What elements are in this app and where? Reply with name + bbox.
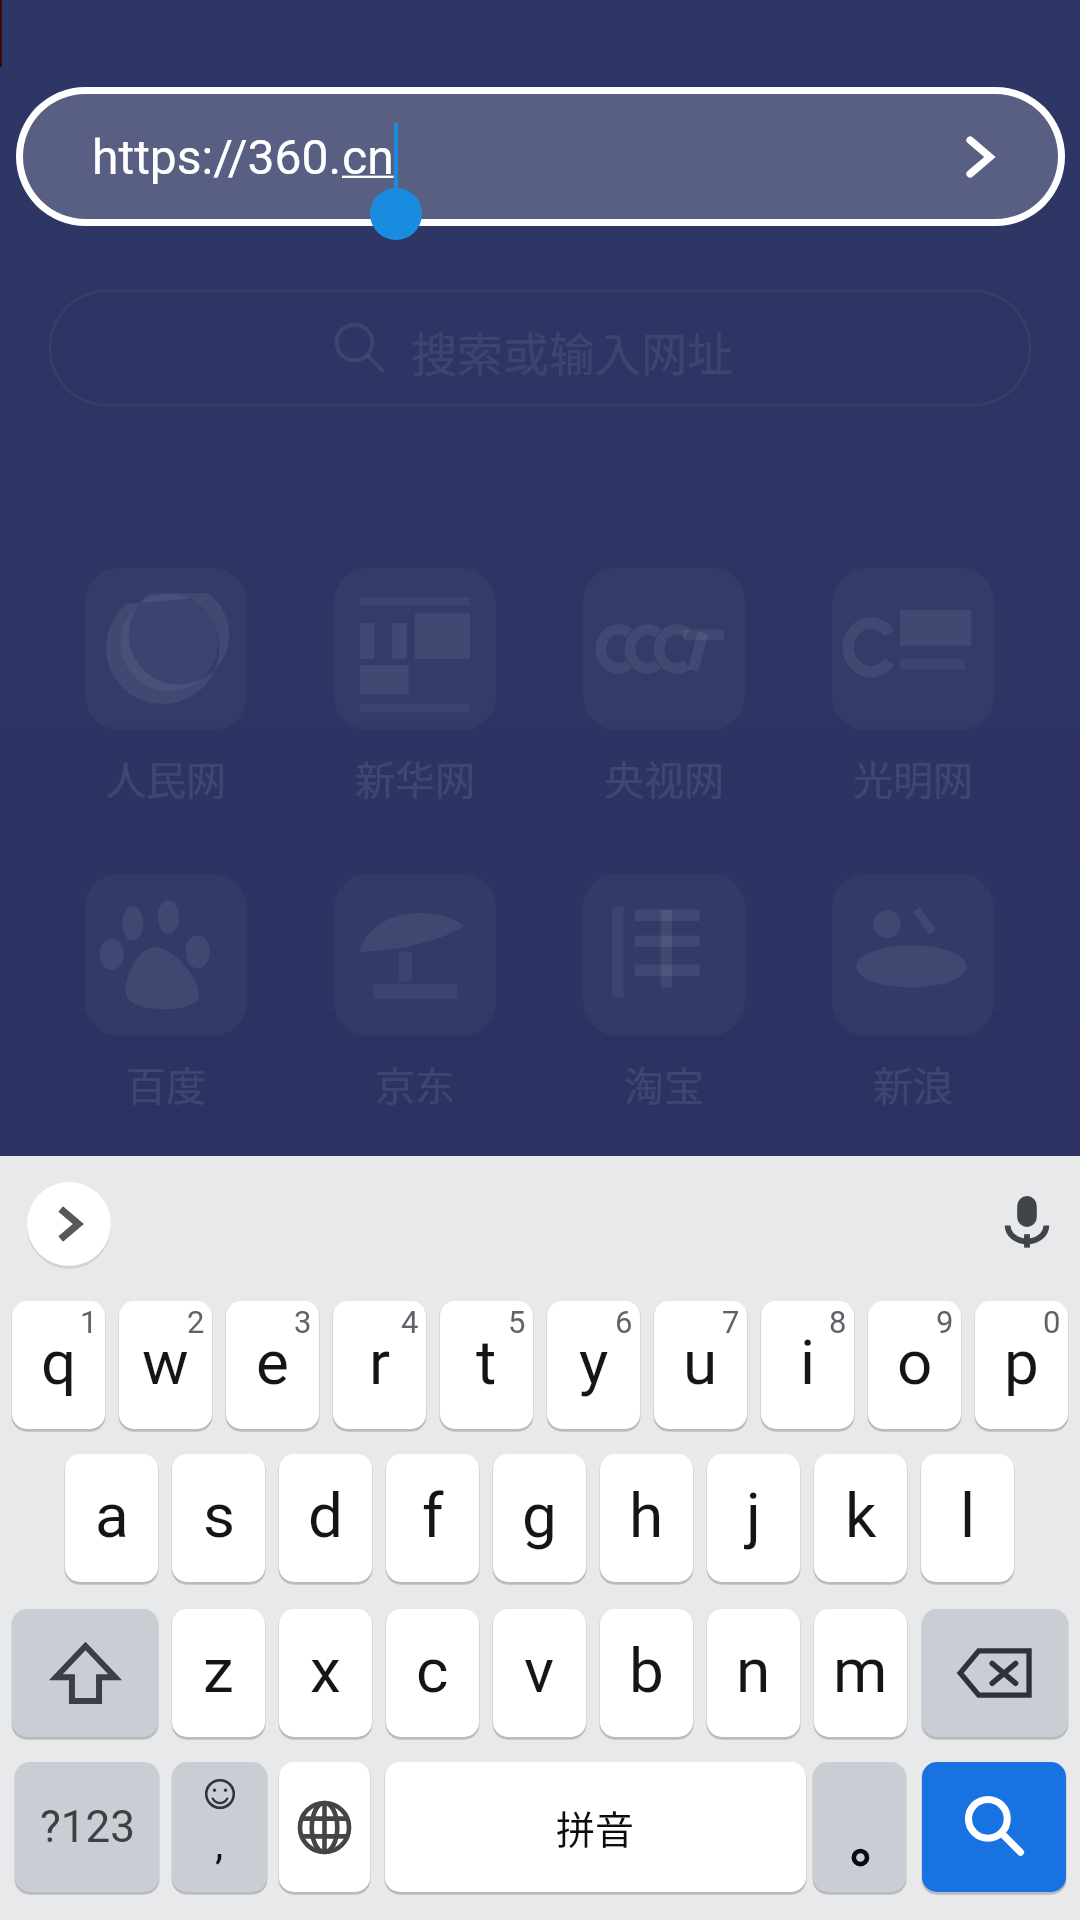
staticText: r xyxy=(369,1326,391,1399)
staticText: h xyxy=(629,1479,664,1552)
staticText: 1 xyxy=(80,1304,98,1340)
staticText: w xyxy=(142,1326,189,1399)
button[interactable]: 2 xyxy=(119,1301,212,1429)
staticText: s xyxy=(203,1479,235,1552)
button[interactable]: Change language xyxy=(279,1762,370,1892)
staticText: n xyxy=(736,1634,771,1707)
button[interactable]: 5 xyxy=(440,1301,533,1429)
staticText: 0 xyxy=(1043,1304,1061,1340)
staticText: t xyxy=(476,1326,497,1399)
staticText: 3 xyxy=(294,1304,312,1340)
staticText: b xyxy=(629,1634,664,1707)
button[interactable]: c xyxy=(386,1609,479,1737)
button[interactable]: 0 xyxy=(975,1301,1068,1429)
staticText: 人民网 xyxy=(106,749,226,805)
button[interactable]: 京东 xyxy=(334,874,496,1036)
staticText: i xyxy=(800,1326,816,1399)
staticText: l xyxy=(960,1479,976,1552)
staticText: g xyxy=(522,1479,557,1552)
button[interactable]: m xyxy=(814,1609,907,1737)
staticText: 新浪 xyxy=(873,1055,953,1111)
staticText: cn xyxy=(342,129,394,185)
staticText: 搜索或输入网址 xyxy=(411,318,733,385)
staticText: 2 xyxy=(187,1304,205,1340)
button[interactable]: 6 xyxy=(547,1301,640,1429)
button[interactable]: Period xyxy=(813,1762,906,1892)
button[interactable]: 1 xyxy=(12,1301,105,1429)
button[interactable]: Symbols xyxy=(15,1762,159,1892)
staticText: c xyxy=(416,1634,449,1707)
button[interactable]: 拼音 xyxy=(385,1762,806,1892)
staticText: m xyxy=(833,1634,888,1707)
staticText: o xyxy=(897,1326,933,1399)
staticText: p xyxy=(1004,1326,1039,1399)
staticText: d xyxy=(308,1479,343,1552)
button[interactable]: Cursor handle xyxy=(370,188,422,240)
button[interactable]: 央视网 xyxy=(583,568,745,730)
staticText: 9 xyxy=(936,1304,954,1340)
button[interactable]: Emoji and comma xyxy=(172,1762,267,1892)
button[interactable]: a xyxy=(65,1454,158,1582)
button[interactable]: l xyxy=(921,1454,1014,1582)
staticText: f xyxy=(422,1479,444,1552)
staticText: https://360. xyxy=(92,129,342,185)
button[interactable]: Search or type URL xyxy=(50,291,1030,405)
button[interactable]: 8 xyxy=(761,1301,854,1429)
staticText: x xyxy=(310,1634,341,1707)
staticText: v xyxy=(524,1634,555,1707)
staticText: j xyxy=(746,1479,761,1552)
button[interactable]: k xyxy=(814,1454,907,1582)
button[interactable]: g xyxy=(493,1454,586,1582)
button[interactable]: 3 xyxy=(226,1301,319,1429)
staticText: a xyxy=(95,1479,129,1552)
staticText: z xyxy=(203,1634,234,1707)
staticText: 5 xyxy=(508,1304,526,1340)
button[interactable]: 百度 xyxy=(85,874,247,1036)
button[interactable]: d xyxy=(279,1454,372,1582)
staticText: 光明网 xyxy=(853,749,973,805)
button[interactable]: https://360. xyxy=(23,94,1058,219)
button[interactable]: b xyxy=(600,1609,693,1737)
button[interactable]: j xyxy=(707,1454,800,1582)
staticText: 6 xyxy=(615,1304,633,1340)
button[interactable]: 9 xyxy=(868,1301,961,1429)
button[interactable]: n xyxy=(707,1609,800,1737)
button[interactable]: Expand toolbar xyxy=(27,1182,111,1266)
staticText: y xyxy=(579,1326,609,1399)
button[interactable]: Go xyxy=(947,124,1013,190)
button[interactable]: Shift xyxy=(12,1609,158,1737)
staticText: 央视网 xyxy=(604,749,724,805)
staticText: e xyxy=(256,1326,289,1399)
button[interactable]: x xyxy=(279,1609,372,1737)
staticText: , xyxy=(215,1820,224,1869)
staticText: 8 xyxy=(829,1304,847,1340)
staticText: u xyxy=(683,1326,718,1399)
button[interactable]: 7 xyxy=(654,1301,747,1429)
button[interactable]: Search xyxy=(922,1762,1066,1892)
staticText: ?123 xyxy=(40,1801,135,1853)
button[interactable]: 淘宝 xyxy=(583,874,745,1036)
staticText: 拼音 xyxy=(556,1799,635,1855)
button[interactable]: s xyxy=(172,1454,265,1582)
button[interactable]: Voice input xyxy=(984,1180,1070,1266)
button[interactable]: 人民网 xyxy=(85,568,247,730)
staticText: 京东 xyxy=(375,1055,455,1111)
staticText: 新华网 xyxy=(355,749,475,805)
button[interactable]: v xyxy=(493,1609,586,1737)
button[interactable]: 新华网 xyxy=(334,568,496,730)
button[interactable]: Delete xyxy=(922,1609,1068,1737)
staticText: q xyxy=(41,1326,77,1399)
staticText: 7 xyxy=(722,1304,740,1340)
staticText: k xyxy=(845,1479,877,1552)
staticText: 4 xyxy=(401,1304,419,1340)
button[interactable]: 新浪 xyxy=(832,874,994,1036)
button[interactable]: h xyxy=(600,1454,693,1582)
button[interactable]: z xyxy=(172,1609,265,1737)
staticText: 淘宝 xyxy=(624,1055,704,1111)
button[interactable]: 4 xyxy=(333,1301,426,1429)
staticText: 百度 xyxy=(126,1055,206,1111)
button[interactable]: 光明网 xyxy=(832,568,994,730)
button[interactable]: f xyxy=(386,1454,479,1582)
